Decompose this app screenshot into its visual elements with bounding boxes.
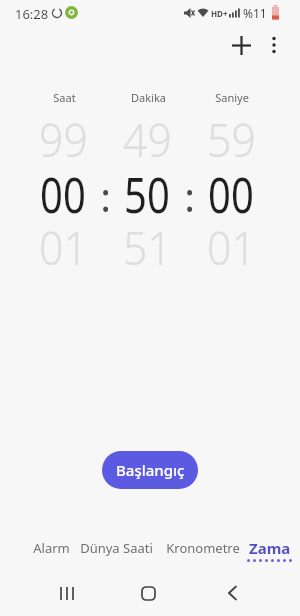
- staticText: Başlangıç: [116, 460, 185, 480]
- staticText: 01: [207, 216, 256, 272]
- staticText: 59: [207, 108, 256, 164]
- staticText: Saat: [53, 90, 76, 105]
- staticText: 49: [123, 108, 172, 164]
- staticText: 00: [40, 160, 86, 216]
- button[interactable]: [47, 578, 87, 608]
- staticText: Dakika: [131, 90, 166, 105]
- button[interactable]: Alarm: [21, 539, 81, 556]
- staticText: 50: [124, 160, 170, 216]
- button[interactable]: [230, 34, 252, 56]
- button[interactable]: [264, 34, 284, 56]
- staticText: HD+: [211, 8, 228, 19]
- staticText: :: [184, 169, 195, 223]
- button[interactable]: Kronometre: [161, 539, 245, 556]
- staticText: 01: [39, 216, 88, 272]
- button[interactable]: Zamanlayıcı: [249, 538, 291, 556]
- button[interactable]: Dünya Saati: [74, 539, 158, 556]
- staticText: %11: [243, 5, 267, 21]
- button[interactable]: [128, 578, 168, 608]
- staticText: 00: [208, 160, 254, 216]
- staticText: Alarm: [33, 539, 70, 556]
- staticText: 99: [39, 108, 88, 164]
- staticText: 16:28: [15, 5, 49, 23]
- staticText: Dünya Saati: [80, 539, 153, 556]
- staticText: Saniye: [215, 90, 249, 105]
- button[interactable]: Başlangıç: [102, 451, 198, 489]
- staticText: :: [100, 169, 111, 223]
- staticText: 51: [123, 216, 172, 272]
- staticText: Zamanlayıcı: [249, 538, 291, 556]
- staticText: Kronometre: [166, 539, 240, 556]
- button[interactable]: [212, 578, 252, 608]
